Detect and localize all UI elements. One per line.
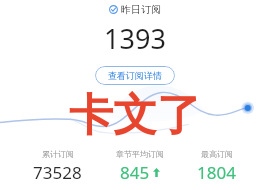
staticText: 累计订阅 <box>42 149 74 159</box>
button[interactable]: 章节平均订阅 <box>116 149 164 184</box>
button[interactable]: 最高订阅 <box>197 149 236 184</box>
other: Verified <box>109 5 118 14</box>
staticText: 卡文了 <box>69 88 201 143</box>
staticText: 1804 <box>197 161 236 184</box>
staticText: 845 <box>120 161 150 184</box>
staticText: 最高订阅 <box>201 149 233 159</box>
staticText: 章节平均订阅 <box>116 149 164 159</box>
button[interactable]: 累计订阅 <box>33 149 82 184</box>
button[interactable]: 查看订阅详情 <box>95 66 175 85</box>
staticText: 73528 <box>33 161 82 184</box>
staticText: 昨日订阅 <box>121 3 161 16</box>
staticText: 查看订阅详情 <box>108 70 162 81</box>
staticText: 1393 <box>104 20 166 57</box>
